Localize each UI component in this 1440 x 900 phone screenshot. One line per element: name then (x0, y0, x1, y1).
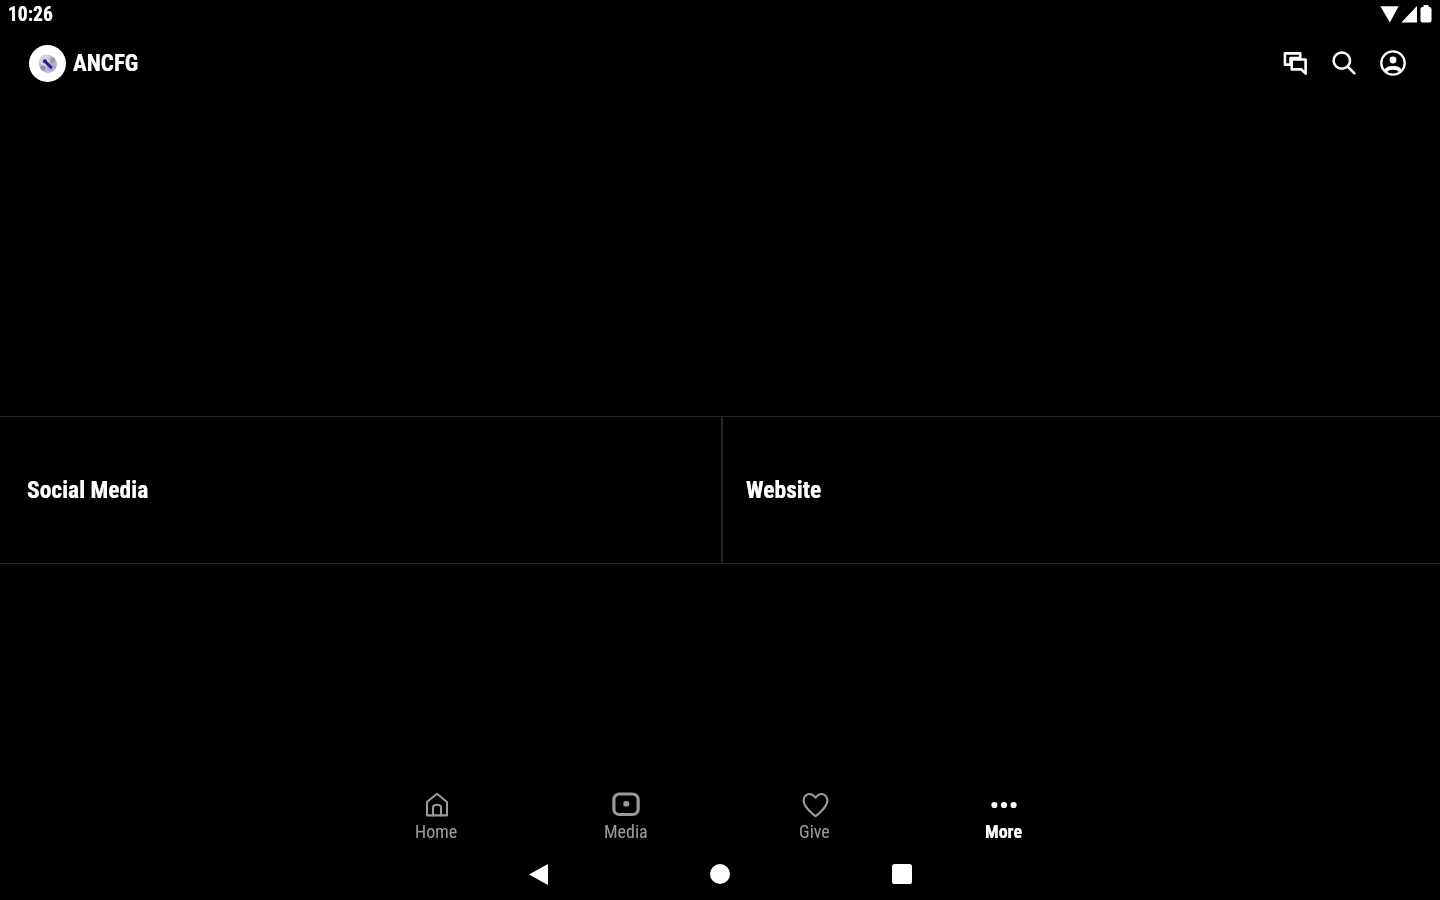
button[interactable]: Account (1369, 39, 1417, 87)
staticText: Social Media (27, 476, 149, 504)
button[interactable]: Search (1320, 39, 1368, 87)
button[interactable]: Recent apps (888, 860, 916, 888)
staticText: ANCFG (73, 50, 139, 77)
button[interactable]: ANCFG (29, 45, 139, 82)
button[interactable]: Website (723, 417, 1440, 563)
button[interactable]: Give (720, 785, 909, 847)
button[interactable]: Messages (1271, 39, 1319, 87)
staticText: Media (604, 821, 648, 842)
button[interactable]: More (909, 785, 1098, 847)
button[interactable]: Home (342, 785, 531, 847)
staticText: Home (415, 821, 458, 842)
staticText: 10:26 (8, 3, 53, 26)
button[interactable]: Back (524, 860, 552, 888)
button[interactable]: Social Media (0, 417, 721, 563)
staticText: Give (799, 821, 830, 842)
button[interactable]: Media (531, 785, 720, 847)
staticText: Website (746, 476, 822, 504)
staticText: More (985, 821, 1023, 842)
button[interactable]: Home (706, 860, 734, 888)
